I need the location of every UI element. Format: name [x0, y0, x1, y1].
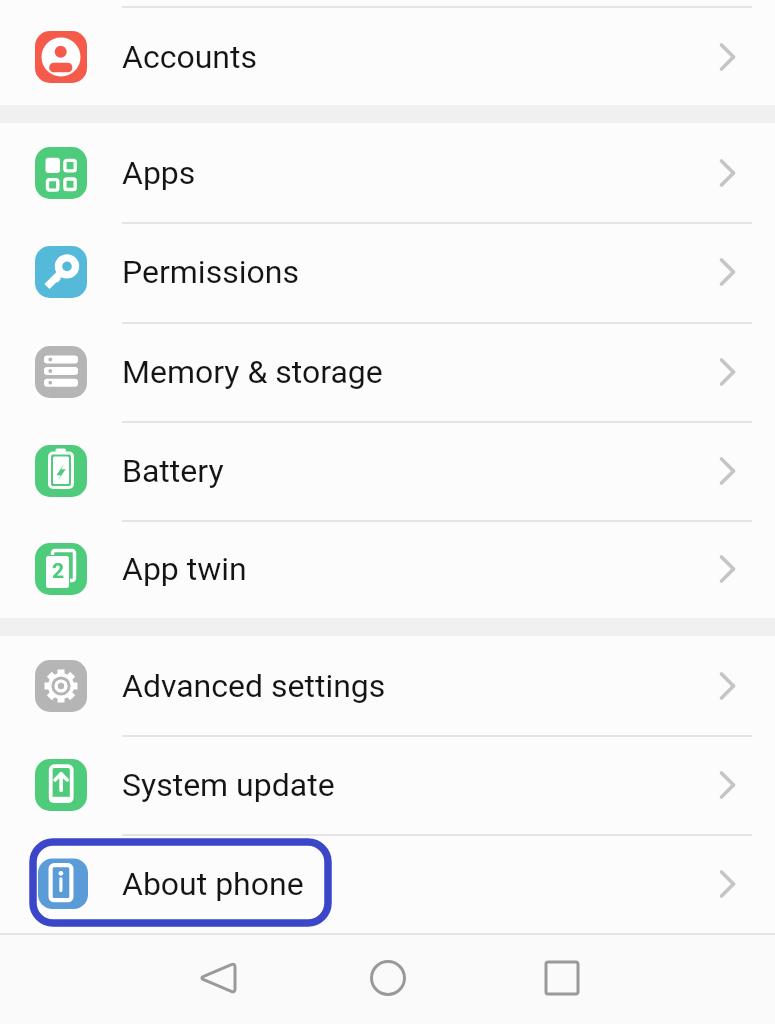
staticText: About phone [122, 865, 304, 903]
button[interactable]: Advanced settings [0, 636, 775, 735]
staticText: App twin [122, 550, 247, 588]
button[interactable] [534, 950, 590, 1006]
button[interactable]: 2 [0, 520, 775, 618]
staticText: Memory & storage [122, 353, 383, 391]
staticText: Advanced settings [122, 667, 386, 705]
button[interactable]: System update [0, 735, 775, 834]
button[interactable]: Accounts [0, 8, 775, 105]
button[interactable] [190, 950, 246, 1006]
button[interactable] [360, 950, 416, 1006]
staticText: 2 [52, 559, 65, 584]
button[interactable]: Battery [0, 421, 775, 520]
staticText: Accounts [122, 38, 257, 76]
button[interactable]: Permissions [0, 222, 775, 322]
button[interactable]: About phone [0, 834, 775, 933]
button[interactable]: Apps [0, 123, 775, 222]
button[interactable]: Memory & storage [0, 322, 775, 421]
staticText: Permissions [122, 253, 299, 291]
staticText: Battery [122, 452, 224, 490]
staticText: Apps [122, 154, 196, 192]
staticText: System update [122, 766, 335, 804]
